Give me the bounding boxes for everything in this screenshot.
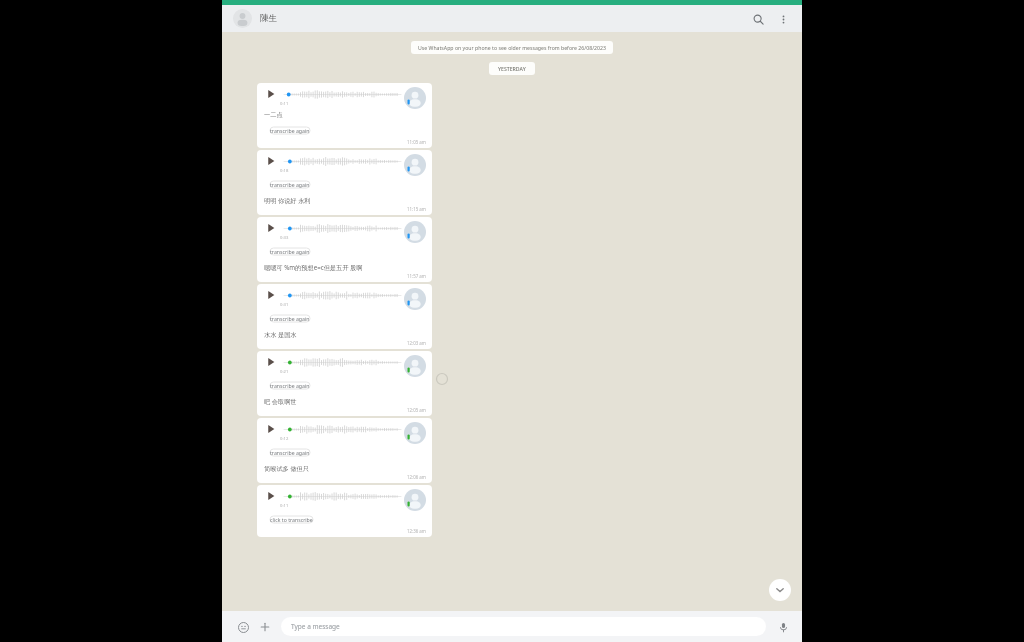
staticText: 0:11 [280,101,289,107]
staticText: transcribe again [270,449,310,456]
staticText: 明明 你说好 永利 [264,196,311,204]
staticText: 水水 是国水 [264,330,297,338]
staticText: 12:36 am [407,528,426,534]
staticText: 吧 会取啊世 [264,397,297,405]
button[interactable]: transcribe again [264,245,316,258]
button[interactable]: Search [747,8,769,30]
button[interactable]: Play voice message [257,418,432,483]
button[interactable]: Play voice message [264,422,278,436]
staticText: transcribe again [270,315,310,322]
staticText: 11:15 am [407,206,426,212]
button[interactable]: Play voice message [257,284,432,349]
button[interactable]: transcribe again [264,124,316,137]
button[interactable]: Play voice message [264,288,278,302]
staticText: Type a message [291,622,340,631]
staticText: 0:33 [280,235,289,241]
button[interactable]: Scroll to bottom [769,579,791,601]
staticText: 12:03 am [407,340,426,346]
button[interactable]: Attach [257,619,273,635]
staticText: 0:21 [280,369,289,375]
staticText: YESTERDAY [498,65,526,72]
staticText: Use WhatsApp on your phone to see older … [418,44,606,51]
staticText: 12:05 am [407,407,426,413]
staticText: transcribe again [270,127,310,134]
button[interactable]: Voice message [774,618,792,636]
staticText: 一二点 [264,111,283,119]
button[interactable]: Emoji [235,619,251,635]
staticText: transcribe again [270,248,310,255]
button[interactable]: transcribe again [264,312,316,325]
staticText: 0:12 [280,436,289,442]
button[interactable]: Play voice message [264,154,278,168]
staticText: transcribe again [270,181,310,188]
staticText: 12:06 am [407,474,426,480]
button[interactable]: transcribe again [264,446,316,459]
staticText: click to transcribe [270,516,313,523]
staticText: 0:18 [280,168,289,174]
staticText: 11:05 am [407,139,426,145]
button[interactable]: Play voice message [257,150,432,215]
button[interactable]: Play voice message [264,355,278,369]
button[interactable]: Play voice message [257,351,432,416]
button[interactable]: transcribe again [264,178,316,191]
button[interactable]: Play voice message [257,83,432,148]
button[interactable]: Play voice message [264,87,278,101]
button[interactable]: Play voice message [257,217,432,282]
button[interactable]: Play voice message [264,221,278,235]
staticText: 嗯嗯可 %m的预想e=c但是五开 股啊 [264,263,363,271]
button[interactable] [233,9,252,28]
button[interactable]: Play voice message [264,489,278,503]
button[interactable]: Type a message [281,617,766,636]
button[interactable]: transcribe again [264,379,316,392]
button[interactable]: Play voice message [257,485,432,537]
staticText: 0:31 [280,302,289,308]
staticText: 陳生 [260,13,277,24]
staticText: transcribe again [270,382,310,389]
button[interactable]: click to transcribe [264,513,319,526]
button[interactable]: More options [772,8,794,30]
staticText: 简喉试多 做但只 [264,464,309,472]
staticText: 11:57 am [407,273,426,279]
staticText: 0:11 [280,503,289,509]
